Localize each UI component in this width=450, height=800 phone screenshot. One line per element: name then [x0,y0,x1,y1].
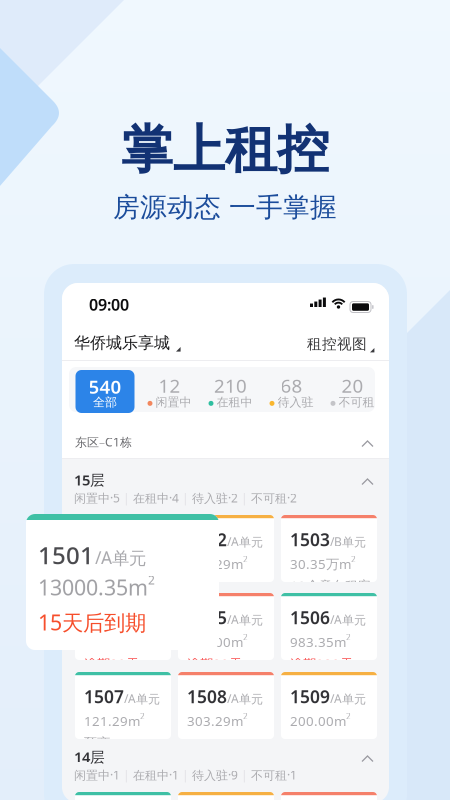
staticText: 华侨城乐享城 [74,333,170,353]
staticText: 120.00m [187,633,243,651]
staticText: 13000.35m [38,573,148,601]
staticText: 30.35万m [290,555,351,573]
staticText: 15天后到期 [38,608,146,636]
button[interactable]: 14层 [62,742,389,788]
staticText: 20 [341,373,363,398]
button[interactable]: 1504 [75,593,171,660]
button[interactable]: 1501 [26,514,219,650]
staticText: 租控视图 [307,335,367,353]
staticText: 预离 2019/05/16 [84,734,158,769]
staticText: 不可租 [338,395,374,410]
staticText: 2 [148,572,155,588]
staticText: 在租中 [216,395,252,410]
staticText: 12个意向租客 [290,577,371,594]
staticText: 303.29m [187,712,243,730]
staticText: 1507 [84,685,124,708]
staticText: 全部 [93,395,117,410]
staticText: 200.00m [290,712,346,730]
button[interactable]: 20 [322,370,383,413]
button[interactable]: 15层 [62,465,389,511]
button[interactable]: 540 [75,370,134,413]
staticText: 待入驻 [277,395,313,410]
staticText: 2 [243,711,248,722]
staticText: 在租中·4 [133,490,179,506]
staticText: /A单元 [124,612,160,628]
staticText: /A单元 [330,612,366,628]
button[interactable]: 210 [200,370,261,413]
staticText: 闲置中·5 [74,490,120,506]
button[interactable]: 1505 [178,593,274,660]
button[interactable]: 1509 [281,672,377,739]
staticText: 121.29m [84,712,140,730]
staticText: 12 [158,373,180,398]
staticText: 2 [351,554,356,565]
staticText: 1509 [290,685,330,708]
staticText: 2 [132,632,137,643]
staticText: 1506 [290,606,330,629]
staticText: 231.29m [187,555,243,573]
staticText: 2 [243,554,248,565]
button[interactable]: 1503 [281,515,377,582]
staticText: 1501 [84,528,124,551]
staticText: /B单元 [330,534,366,550]
staticText: 2 [243,632,248,643]
staticText: 1503 [290,528,330,551]
staticText: 待入驻·9 [192,767,238,783]
staticText: 68 [280,373,302,398]
staticText: 1508 [187,685,227,708]
staticText: 983.35m [290,633,346,651]
staticText: | [179,490,192,506]
staticText: 1501 [38,539,94,571]
staticText: 待入驻·2 [192,490,238,506]
staticText: 闲置中 [155,395,191,410]
staticText: /A单元 [95,546,146,569]
staticText: 2 [140,711,145,722]
staticText: 在租中·1 [133,767,179,783]
staticText: /A单元 [330,691,366,707]
staticText: /A单元 [227,691,263,707]
staticText: 13000.35m [84,555,156,573]
staticText: 逾期32天 [84,655,139,672]
button[interactable]: 1507 [75,672,171,739]
staticText: | [238,490,251,506]
staticText: 不可租·2 [251,490,297,506]
staticText: 1502 [187,528,227,551]
staticText: 210 [214,373,247,398]
staticText: 2 [346,632,351,643]
staticText: 2 [346,711,351,722]
button[interactable]: 1401 [75,792,171,800]
staticText: 14层 [74,747,105,766]
staticText: | [238,767,251,783]
staticText: 掌上租控 [121,118,329,182]
staticText: 540 [88,374,121,399]
staticText: | [120,767,133,783]
button[interactable]: 东区–C1栋 [62,422,389,459]
staticText: 1505 [187,606,227,629]
staticText: 09:00 [89,294,129,315]
staticText: 逾期232天 [290,655,353,672]
staticText: /A单元 [124,691,160,707]
button[interactable]: 华侨城乐享城 [74,328,194,354]
staticText: 房源动态 一手掌握 [113,191,337,224]
staticText: 逾期32天 [187,655,242,672]
staticText: 1504 [84,606,124,629]
staticText: 东区–C1栋 [75,434,132,450]
staticText: 闲置中·1 [74,767,120,783]
staticText: 15层 [74,470,105,489]
button[interactable]: 1501 [75,515,171,582]
button[interactable]: 12 [139,370,200,413]
staticText: /A单元 [227,612,263,628]
staticText: 不可租·1 [251,767,297,783]
button[interactable]: 1403 [281,792,377,800]
staticText: | [120,490,133,506]
button[interactable]: 1402 [178,792,274,800]
button[interactable]: 1506 [281,593,377,660]
staticText: | [179,767,192,783]
button[interactable]: 租控视图 [307,330,377,354]
button[interactable]: 1508 [178,672,274,739]
button[interactable]: 68 [261,370,322,413]
button[interactable]: 1502 [178,515,274,582]
